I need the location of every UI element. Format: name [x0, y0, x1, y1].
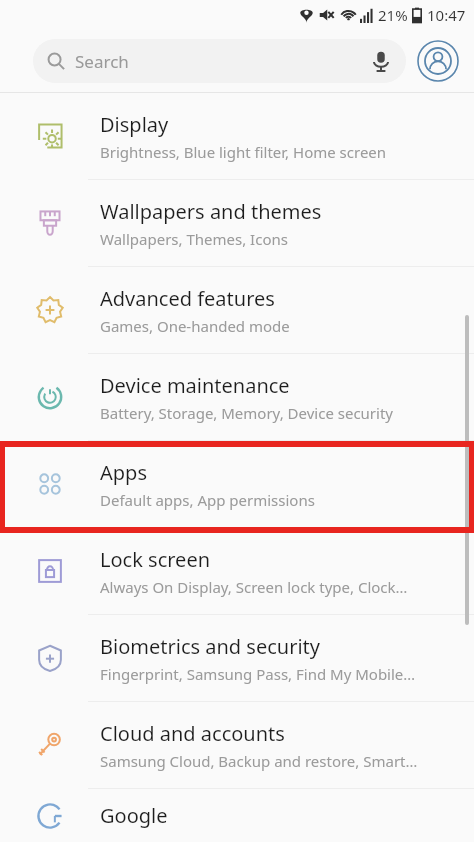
- staticText: Default apps, App permissions: [100, 490, 315, 510]
- staticText: Games, One-handed mode: [100, 316, 290, 336]
- button[interactable]: Advanced features: [0, 267, 474, 353]
- staticText: Lock screen: [100, 546, 211, 573]
- staticText: Device maintenance: [100, 372, 290, 399]
- staticText: Brightness, Blue light filter, Home scre…: [100, 142, 387, 162]
- button[interactable]: Wallpapers and themes: [0, 180, 474, 266]
- button[interactable]: Google: [0, 789, 474, 842]
- button[interactable]: Cloud and accounts: [0, 702, 474, 788]
- staticText: Cloud and accounts: [100, 720, 285, 747]
- button[interactable]: Device maintenance: [0, 354, 474, 440]
- button[interactable]: Biometrics and security: [0, 615, 474, 701]
- button[interactable]: Search: [33, 39, 406, 83]
- staticText: Advanced features: [100, 285, 275, 312]
- button[interactable]: Display: [0, 93, 474, 179]
- staticText: Biometrics and security: [100, 633, 320, 660]
- staticText: Samsung Cloud, Backup and restore, Smart…: [100, 751, 418, 771]
- button[interactable]: Apps: [0, 441, 474, 527]
- staticText: Always On Display, Screen lock type, Clo…: [100, 577, 408, 597]
- staticText: Wallpapers, Themes, Icons: [100, 229, 288, 249]
- button[interactable]: Voice search: [370, 50, 392, 72]
- staticText: Battery, Storage, Memory, Device securit…: [100, 403, 393, 423]
- button[interactable]: Lock screen: [0, 528, 474, 614]
- staticText: Display: [100, 111, 169, 138]
- staticText: Search: [75, 50, 129, 73]
- staticText: Apps: [100, 459, 147, 486]
- staticText: Google: [100, 802, 168, 829]
- staticText: Fingerprint, Samsung Pass, Find My Mobil…: [100, 664, 416, 684]
- staticText: 21%: [378, 5, 408, 25]
- staticText: 10:47: [427, 5, 466, 25]
- button[interactable]: Account: [416, 39, 460, 83]
- staticText: Wallpapers and themes: [100, 198, 322, 225]
